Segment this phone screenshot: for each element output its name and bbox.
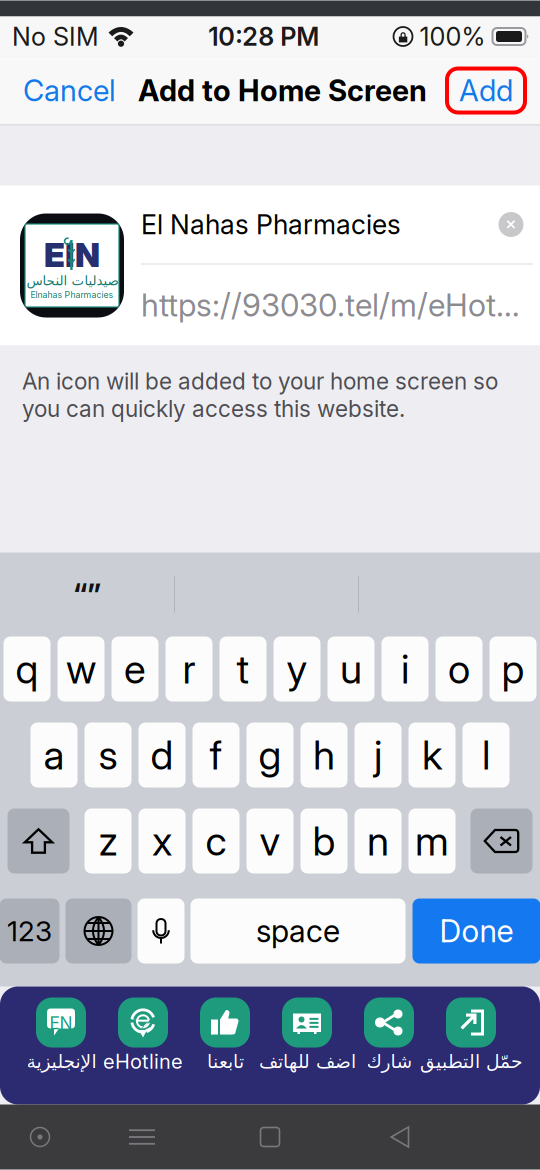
staticText: a <box>43 731 64 779</box>
button[interactable]: space <box>190 898 405 963</box>
button[interactable]: g <box>246 722 293 787</box>
button[interactable]: f <box>192 722 239 787</box>
staticText: https://93030.tel/m/eHotl… <box>141 286 525 324</box>
staticText: x <box>152 817 172 865</box>
button[interactable]: u <box>327 636 374 701</box>
staticText: Cancel <box>23 73 116 108</box>
staticText: space <box>256 912 340 949</box>
button[interactable]: EN <box>20 997 102 1093</box>
button[interactable]: Delete <box>470 808 532 873</box>
button[interactable]: s <box>84 722 131 787</box>
button[interactable]: حمّل التطبيق <box>430 997 512 1093</box>
staticText: v <box>259 817 280 865</box>
button[interactable]: Add <box>439 56 540 124</box>
staticText: j <box>374 731 382 779</box>
staticText: h <box>313 731 335 779</box>
staticText: d <box>150 731 173 779</box>
button[interactable]: z <box>84 808 131 873</box>
button[interactable]: Clear text <box>489 202 533 246</box>
button[interactable]: m <box>408 808 455 873</box>
staticText: b <box>312 817 335 865</box>
staticText: c <box>205 817 226 865</box>
button[interactable]: p <box>489 636 536 701</box>
button[interactable]: k <box>408 722 455 787</box>
button[interactable]: l <box>462 722 509 787</box>
button[interactable]: t <box>219 636 266 701</box>
button[interactable]: Next keyboard <box>65 898 131 963</box>
staticText: r <box>182 645 195 693</box>
staticText: 100% <box>419 21 485 52</box>
button[interactable]: c <box>192 808 239 873</box>
button[interactable]: i <box>381 636 428 701</box>
button[interactable]: تابعنا <box>184 997 266 1093</box>
button[interactable]: h <box>300 722 347 787</box>
staticText: q <box>15 645 38 693</box>
staticText: Elnahas Pharmacies <box>30 289 113 300</box>
button[interactable]: 123 <box>0 898 59 963</box>
button[interactable]: eHotline <box>102 997 184 1093</box>
button[interactable]: Back <box>360 1104 440 1169</box>
staticText: t <box>236 645 249 693</box>
button[interactable]: v <box>246 808 293 873</box>
staticText: l <box>482 731 490 779</box>
button[interactable]: x <box>138 808 185 873</box>
staticText: u <box>340 645 362 693</box>
staticText: “” <box>73 575 101 614</box>
staticText: No SIM <box>12 21 99 52</box>
button[interactable]: j <box>354 722 401 787</box>
staticText: 10:28 PM <box>208 21 319 52</box>
button[interactable]: n <box>354 808 401 873</box>
staticText: w <box>66 645 96 693</box>
button[interactable]: Dictate <box>137 898 184 963</box>
staticText: Done <box>439 912 513 949</box>
staticText: تابعنا <box>206 1051 243 1072</box>
staticText: s <box>98 731 117 779</box>
staticText: g <box>258 731 281 779</box>
staticText: k <box>422 731 442 779</box>
staticText: An icon will be added to your home scree… <box>22 367 498 422</box>
staticText: EN <box>49 1012 72 1033</box>
staticText: p <box>501 645 524 693</box>
button[interactable]: Home <box>230 1104 310 1169</box>
staticText: Add to Home Screen <box>138 73 427 108</box>
staticText: 123 <box>7 914 52 948</box>
button[interactable]: Record <box>0 1104 80 1169</box>
button[interactable]: اضف للهاتف <box>266 997 348 1093</box>
staticText: y <box>286 645 307 693</box>
staticText: o <box>448 645 470 693</box>
button[interactable]: شارك <box>348 997 430 1093</box>
button[interactable]: Shift <box>7 808 69 873</box>
button[interactable]: b <box>300 808 347 873</box>
staticText: حمّل التطبيق <box>419 1051 522 1072</box>
staticText: f <box>209 731 222 779</box>
staticText: e <box>124 645 146 693</box>
staticText: شارك <box>366 1051 412 1072</box>
button[interactable]: a <box>30 722 77 787</box>
button[interactable]: e <box>111 636 158 701</box>
button[interactable]: q <box>3 636 50 701</box>
button[interactable]: r <box>165 636 212 701</box>
staticText: EIN <box>44 235 100 275</box>
button[interactable]: Cancel <box>0 56 126 124</box>
staticText: El Nahas Pharmacies <box>141 208 401 241</box>
staticText: i <box>401 645 409 693</box>
button[interactable]: Menu <box>102 1104 182 1169</box>
staticText: الإنجليزية <box>26 1051 96 1072</box>
button[interactable]: Done <box>412 898 540 963</box>
button[interactable]: d <box>138 722 185 787</box>
staticText: m <box>415 817 449 865</box>
button[interactable]: w <box>57 636 104 701</box>
staticText: Add <box>459 73 513 108</box>
staticText: صيدليات النحاس <box>26 273 118 288</box>
button[interactable]: o <box>435 636 482 701</box>
button[interactable]: y <box>273 636 320 701</box>
staticText: اضف للهاتف <box>258 1051 355 1072</box>
staticText: z <box>98 817 117 865</box>
staticText: n <box>367 817 389 865</box>
button[interactable]: “” <box>0 569 174 619</box>
staticText: eHotline <box>103 1049 183 1074</box>
